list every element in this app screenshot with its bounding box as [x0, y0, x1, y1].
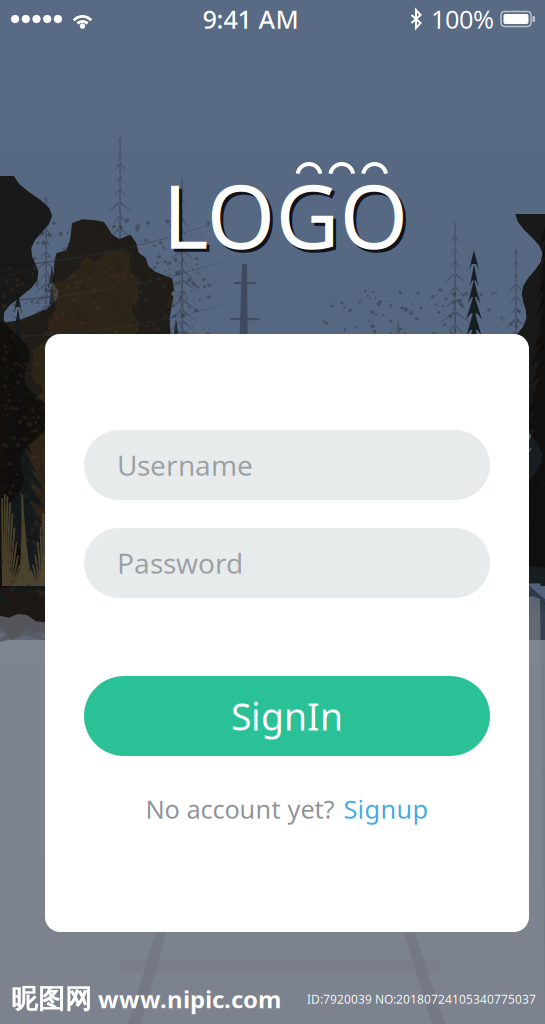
staticText: Password	[117, 544, 243, 582]
button[interactable]: SignIn	[84, 676, 490, 756]
button[interactable]: Password	[84, 528, 490, 598]
staticText: 100%	[431, 2, 494, 36]
staticText: No account yet?	[145, 792, 334, 826]
staticText: LOGO	[162, 156, 408, 273]
staticText: Signup	[343, 792, 428, 826]
staticText: ID:7920039 NO:20180724105340775037	[307, 991, 536, 1007]
staticText: 昵图网	[11, 983, 92, 1015]
button[interactable]: Signup	[343, 792, 428, 826]
staticText: 9:41 AM	[202, 2, 298, 36]
staticText: Username	[117, 446, 253, 484]
button[interactable]: Username	[84, 430, 490, 500]
staticText: SignIn	[231, 691, 343, 741]
staticText: www.nipic.com	[98, 983, 281, 1015]
staticText: LOGO	[165, 159, 411, 276]
